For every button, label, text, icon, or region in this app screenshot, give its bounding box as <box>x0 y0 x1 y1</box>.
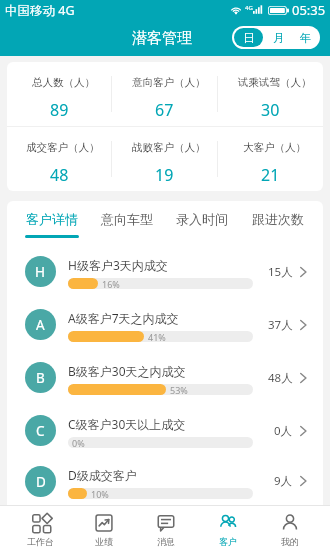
staticText: B <box>36 369 45 387</box>
button[interactable]: 大客户（人） <box>218 127 323 191</box>
staticText: 意向客户（人） <box>132 76 206 89</box>
button[interactable]: D <box>7 457 323 505</box>
other: 查看详情 <box>298 370 309 386</box>
other: 查看详情 <box>298 423 309 439</box>
other: 查看详情 <box>298 264 309 280</box>
button[interactable]: 意向车型 <box>89 201 164 245</box>
staticText: 年 <box>300 31 312 45</box>
staticText: A <box>36 316 45 334</box>
other: 查看详情 <box>298 317 309 333</box>
staticText: 0人 <box>274 423 293 439</box>
staticText: 工作台 <box>27 536 54 547</box>
staticText: 消息 <box>157 536 175 547</box>
staticText: 37人 <box>268 317 293 333</box>
staticText: 10% <box>91 488 109 499</box>
staticText: 战败客户（人） <box>132 141 206 154</box>
staticText: 53% <box>170 384 188 395</box>
button[interactable]: 我的 <box>259 505 321 550</box>
staticText: 中国移动 4G <box>5 2 75 19</box>
staticText: 日 <box>243 31 255 45</box>
staticText: 跟进次数 <box>252 211 304 227</box>
staticText: 67 <box>155 99 174 121</box>
button[interactable]: 录入时间 <box>164 201 240 245</box>
staticText: A级客户7天之内成交 <box>68 310 179 326</box>
staticText: 潜客管理 <box>132 29 192 48</box>
button[interactable]: 意向客户（人） <box>112 62 217 126</box>
button[interactable]: 成交客户（人） <box>7 127 111 191</box>
staticText: 月 <box>273 31 285 45</box>
button[interactable]: 总人数（人） <box>7 62 111 126</box>
staticText: H <box>35 263 46 281</box>
button[interactable]: 业绩 <box>72 505 135 550</box>
staticText: 试乘试驾（人） <box>238 76 312 89</box>
staticText: C级客户30天以上成交 <box>68 416 186 432</box>
staticText: 05:35 <box>292 1 326 19</box>
button[interactable]: A <box>7 298 323 351</box>
button[interactable]: 战败客户（人） <box>112 127 217 191</box>
staticText: 15人 <box>268 264 293 280</box>
staticText: D <box>36 473 46 491</box>
staticText: 成交客户（人） <box>26 141 100 154</box>
staticText: B级客户30天之内成交 <box>68 363 186 379</box>
staticText: C <box>36 422 45 440</box>
button[interactable]: 消息 <box>135 505 197 550</box>
button[interactable]: B <box>7 351 323 404</box>
button[interactable]: C <box>7 404 323 457</box>
staticText: 总人数（人） <box>32 76 95 89</box>
button[interactable]: 客户 <box>197 505 259 550</box>
staticText: 21 <box>261 164 280 186</box>
button[interactable]: 日 <box>234 28 263 47</box>
button[interactable]: 年 <box>292 26 320 49</box>
button[interactable]: H <box>7 245 323 298</box>
staticText: 我的 <box>281 536 299 547</box>
staticText: H级客户3天内成交 <box>68 257 168 273</box>
other: 查看详情 <box>298 473 309 489</box>
button[interactable]: 工作台 <box>9 505 72 550</box>
staticText: 录入时间 <box>176 211 228 227</box>
staticText: 19 <box>155 164 174 186</box>
staticText: 客户详情 <box>26 211 78 227</box>
staticText: 48 <box>50 164 69 186</box>
staticText: 大客户（人） <box>243 141 306 154</box>
staticText: 16% <box>102 278 120 289</box>
staticText: 9人 <box>274 473 293 489</box>
staticText: 意向车型 <box>101 211 153 227</box>
staticText: 0% <box>72 437 85 448</box>
button[interactable]: 月 <box>265 26 292 49</box>
staticText: 30 <box>261 99 280 121</box>
button[interactable]: 客户详情 <box>14 201 89 245</box>
staticText: 业绩 <box>95 536 113 547</box>
staticText: 41% <box>148 331 166 342</box>
staticText: D级成交客户 <box>68 467 137 483</box>
staticText: 89 <box>50 99 69 121</box>
staticText: 客户 <box>219 536 237 547</box>
button[interactable]: 跟进次数 <box>240 201 316 245</box>
button[interactable]: 试乘试驾（人） <box>218 62 323 126</box>
staticText: 48人 <box>268 370 293 386</box>
staticText: 4G <box>245 4 253 12</box>
